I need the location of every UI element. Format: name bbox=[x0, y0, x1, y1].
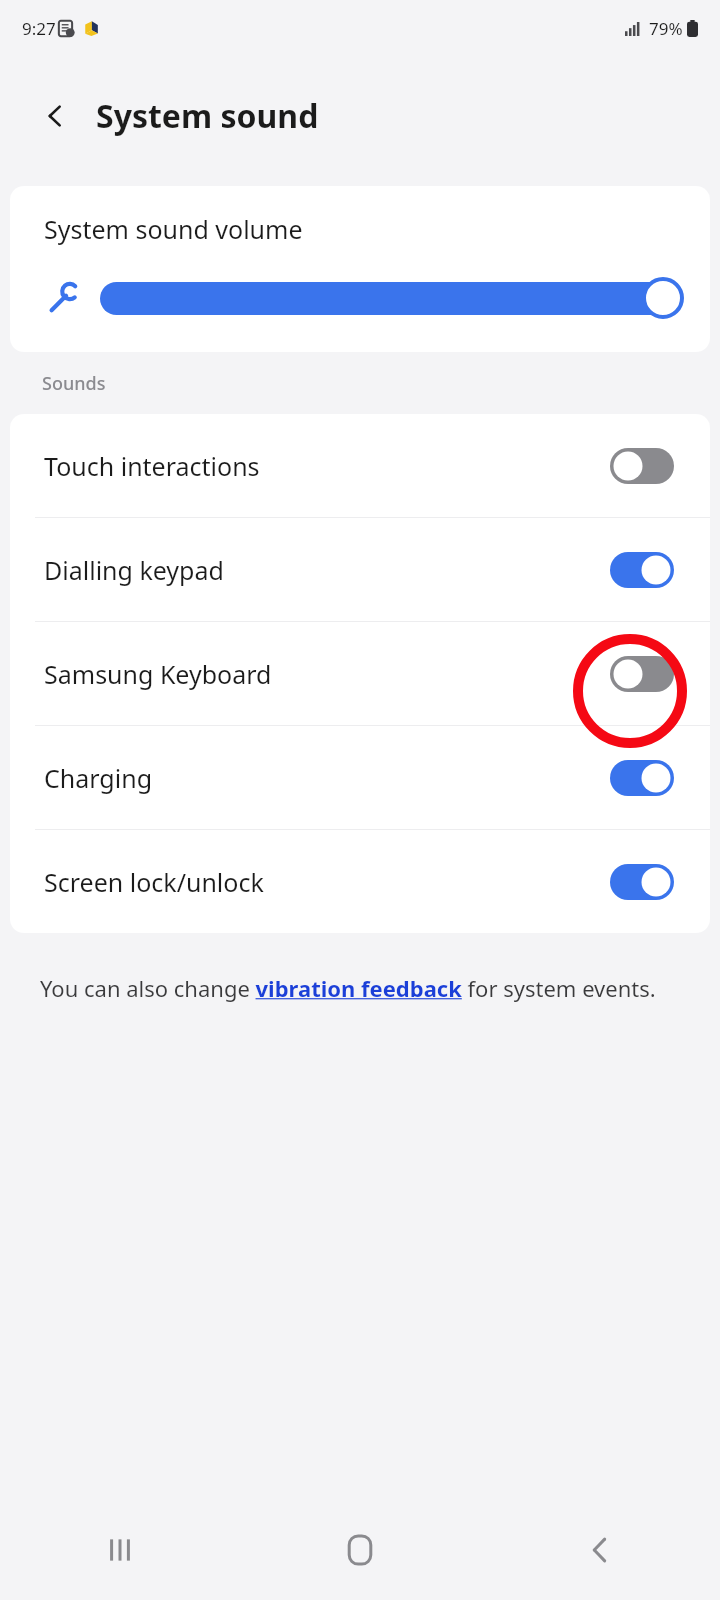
staticText: 79% bbox=[649, 17, 683, 40]
staticText: Charging bbox=[44, 761, 610, 795]
staticText: System sound bbox=[96, 94, 319, 138]
staticText: System sound volume bbox=[44, 212, 303, 246]
button[interactable]: Charging bbox=[10, 726, 710, 829]
staticText: Screen lock/unlock bbox=[44, 865, 610, 899]
button[interactable]: Home bbox=[240, 1500, 480, 1600]
button[interactable]: Screen lock/unlock bbox=[10, 830, 710, 933]
button[interactable]: Back bbox=[480, 1500, 720, 1600]
staticText: Sounds bbox=[42, 371, 106, 396]
button[interactable]: Touch interactions bbox=[10, 414, 710, 517]
staticText: Touch interactions bbox=[44, 449, 610, 483]
staticText: 9:27 bbox=[22, 17, 56, 40]
button[interactable]: Dialling keypad bbox=[10, 518, 710, 621]
staticText: Samsung Keyboard bbox=[44, 657, 610, 691]
staticText: Dialling keypad bbox=[44, 553, 610, 587]
staticText: You can also change vibration feedback f… bbox=[40, 973, 656, 1003]
button[interactable] bbox=[10, 268, 710, 328]
button[interactable]: Back bbox=[30, 91, 80, 141]
button[interactable]: Recents bbox=[0, 1500, 240, 1600]
button[interactable]: Samsung Keyboard bbox=[10, 622, 710, 725]
